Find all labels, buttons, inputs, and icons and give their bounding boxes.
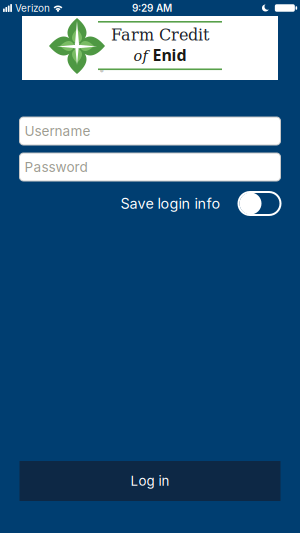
staticText: Farm Credit xyxy=(111,26,209,44)
staticText: Password xyxy=(24,159,87,175)
staticText: 9:29 AM xyxy=(132,2,172,14)
secureTextField[interactable]: Password xyxy=(24,159,280,175)
staticText: Verizon xyxy=(15,2,50,14)
staticText: of Enid xyxy=(133,44,186,65)
staticText: Log in xyxy=(130,473,169,489)
textField[interactable]: Username xyxy=(24,123,280,139)
staticText: ® xyxy=(100,68,104,74)
staticText: Username xyxy=(24,123,90,139)
button[interactable]: Save login info xyxy=(238,192,280,215)
button[interactable]: Log in xyxy=(19,461,280,501)
staticText: Save login info xyxy=(120,195,220,212)
